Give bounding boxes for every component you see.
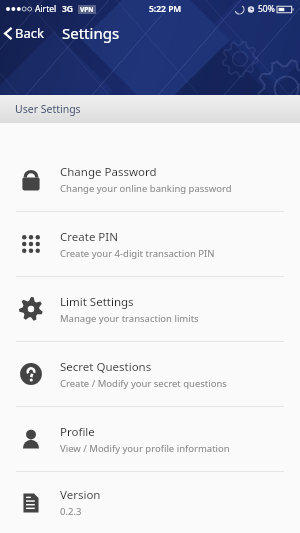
staticText: Create your 4-digit transaction PIN bbox=[60, 247, 215, 260]
staticText: 50% bbox=[258, 3, 275, 15]
button[interactable]: Version bbox=[0, 472, 300, 533]
staticText: Airtel bbox=[35, 3, 57, 15]
staticText: Manage your transaction limits bbox=[60, 312, 199, 325]
staticText: 0.2.3 bbox=[60, 505, 82, 518]
staticText: Change your online banking password bbox=[60, 182, 232, 195]
staticText: Create PIN bbox=[60, 229, 118, 245]
button[interactable]: Change Password bbox=[0, 147, 300, 211]
staticText: 3G bbox=[62, 3, 74, 15]
staticText: Back bbox=[15, 24, 44, 42]
staticText: Secret Questions bbox=[60, 359, 152, 375]
button[interactable]: Limit Settings bbox=[0, 277, 300, 341]
staticText: View / Modify your profile information bbox=[60, 442, 230, 455]
staticText: Create / Modify your secret questions bbox=[60, 377, 227, 390]
staticText: VPN bbox=[80, 5, 94, 14]
staticText: 5:22 PM bbox=[149, 3, 182, 15]
staticText: Settings bbox=[62, 23, 120, 43]
button[interactable]: Profile bbox=[0, 407, 300, 471]
staticText: Profile bbox=[60, 424, 95, 440]
button[interactable]: Secret Questions bbox=[0, 342, 300, 406]
staticText: Limit Settings bbox=[60, 294, 134, 310]
staticText: Change Password bbox=[60, 164, 157, 180]
button[interactable]: Create PIN bbox=[0, 212, 300, 276]
button[interactable]: Back bbox=[0, 21, 50, 45]
staticText: Version bbox=[60, 487, 101, 503]
staticText: User Settings bbox=[15, 102, 81, 116]
